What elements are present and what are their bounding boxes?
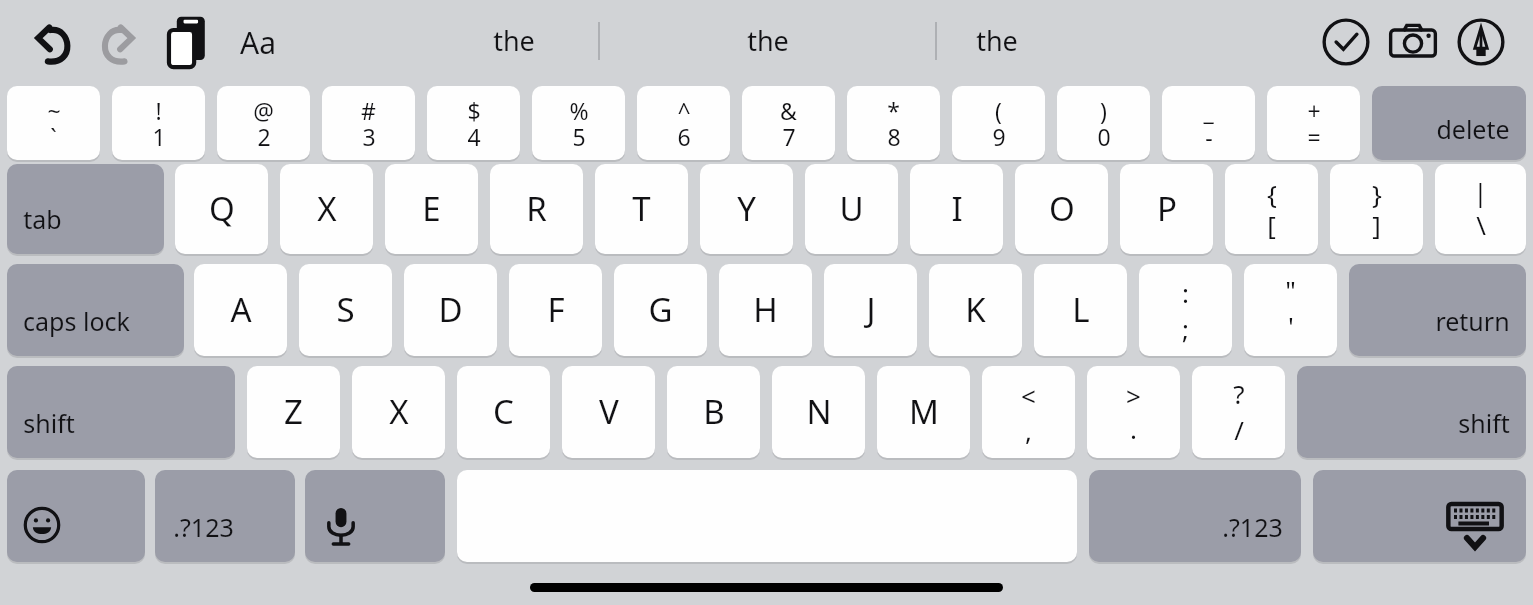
- staticText: U: [839, 186, 864, 231]
- button[interactable]: $ 4: [427, 86, 520, 160]
- button[interactable]: N: [772, 366, 865, 458]
- staticText: shift: [1458, 406, 1510, 440]
- button[interactable]: S: [299, 264, 392, 356]
- staticText: ,: [1025, 413, 1032, 448]
- button[interactable]: shift: [1297, 366, 1526, 458]
- button[interactable]: ( 9: [952, 86, 1045, 160]
- button[interactable]: Emoji: [7, 470, 145, 562]
- staticText: 9: [992, 121, 1006, 152]
- button[interactable]: Z: [247, 366, 340, 458]
- staticText: ": [1285, 272, 1296, 307]
- button[interactable]: Dictate: [305, 470, 445, 562]
- button[interactable]: Q: [175, 164, 268, 254]
- button[interactable]: shift: [7, 366, 235, 458]
- staticText: ?: [1233, 376, 1245, 411]
- button[interactable]: D: [404, 264, 497, 356]
- button[interactable]: + =: [1267, 86, 1360, 160]
- button[interactable]: tab: [7, 164, 164, 254]
- button[interactable]: C: [457, 366, 550, 458]
- staticText: \: [1476, 207, 1486, 242]
- button[interactable]: ~ `: [7, 86, 100, 160]
- staticText: G: [648, 287, 673, 332]
- staticText: X: [317, 186, 337, 231]
- button[interactable]: @ 2: [217, 86, 310, 160]
- button[interactable]: } ]: [1330, 164, 1423, 254]
- button[interactable]: Undo: [22, 14, 80, 70]
- button[interactable]: G: [614, 264, 707, 356]
- staticText: <: [1021, 378, 1036, 413]
- button[interactable]: pipe backslash: [1435, 164, 1526, 254]
- staticText: 8: [887, 121, 901, 152]
- button[interactable]: Redo: [90, 14, 148, 70]
- button[interactable]: F: [509, 264, 602, 356]
- button[interactable]: J: [824, 264, 917, 356]
- button[interactable]: L: [1034, 264, 1127, 356]
- button[interactable]: Camera: [1387, 16, 1439, 68]
- staticText: [: [1267, 207, 1276, 242]
- button[interactable]: return: [1349, 264, 1526, 356]
- button[interactable]: X: [280, 164, 373, 254]
- staticText: 2: [257, 121, 271, 152]
- button[interactable]: # 3: [322, 86, 415, 160]
- button[interactable]: & 7: [742, 86, 835, 160]
- button[interactable]: K: [929, 264, 1022, 356]
- button[interactable]: ) 0: [1057, 86, 1150, 160]
- staticText: .?123: [173, 510, 234, 544]
- button[interactable]: .?123: [1089, 470, 1301, 562]
- staticText: H: [753, 287, 778, 332]
- button[interactable]: T: [595, 164, 688, 254]
- button[interactable]: X: [352, 366, 445, 458]
- button[interactable]: Y: [700, 164, 793, 254]
- button[interactable]: quote apostrophe: [1244, 264, 1337, 356]
- button[interactable]: Aa: [230, 16, 286, 68]
- staticText: $: [467, 95, 481, 126]
- button[interactable]: B: [667, 366, 760, 458]
- button[interactable]: * 8: [847, 86, 940, 160]
- staticText: ): [1100, 95, 1107, 126]
- button[interactable]: less than comma: [982, 366, 1075, 458]
- button[interactable]: E: [385, 164, 478, 254]
- staticText: .: [1130, 411, 1137, 446]
- staticText: 1: [152, 121, 166, 152]
- staticText: ~: [47, 95, 61, 126]
- staticText: Y: [737, 186, 756, 231]
- button[interactable]: P: [1120, 164, 1213, 254]
- staticText: O: [1049, 186, 1075, 231]
- button[interactable]: { [: [1225, 164, 1318, 254]
- staticText: D: [438, 287, 463, 332]
- staticText: the: [747, 22, 789, 59]
- staticText: *: [887, 95, 900, 126]
- button[interactable]: H: [719, 264, 812, 356]
- staticText: {: [1267, 176, 1277, 211]
- button[interactable]: delete: [1372, 86, 1526, 160]
- button[interactable]: V: [562, 366, 655, 458]
- button[interactable]: Done: [1320, 16, 1372, 68]
- button[interactable]: greater than period: [1087, 366, 1180, 458]
- button[interactable]: the: [430, 8, 598, 72]
- staticText: the: [493, 22, 535, 59]
- button[interactable]: M: [877, 366, 970, 458]
- button[interactable]: Paste: [160, 12, 216, 72]
- button[interactable]: Markup: [1455, 16, 1507, 68]
- button[interactable]: question slash: [1192, 366, 1285, 458]
- button[interactable]: caps lock: [7, 264, 184, 356]
- button[interactable]: colon semicolon: [1139, 264, 1232, 356]
- button[interactable]: Hide keyboard: [1313, 470, 1526, 562]
- staticText: caps lock: [23, 304, 130, 338]
- button[interactable]: % 5: [532, 86, 625, 160]
- button[interactable]: .?123: [155, 470, 295, 562]
- button[interactable]: R: [490, 164, 583, 254]
- button[interactable]: ^ 6: [637, 86, 730, 160]
- button[interactable]: A: [194, 264, 287, 356]
- button[interactable]: _ -: [1162, 86, 1255, 160]
- button[interactable]: U: [805, 164, 898, 254]
- button[interactable]: I: [910, 164, 1003, 254]
- button[interactable]: the: [937, 8, 1057, 72]
- staticText: #: [361, 95, 376, 126]
- button[interactable]: ! 1: [112, 86, 205, 160]
- staticText: Z: [284, 389, 303, 434]
- button[interactable]: O: [1015, 164, 1108, 254]
- staticText: R: [526, 186, 547, 231]
- button[interactable]: the: [600, 8, 935, 72]
